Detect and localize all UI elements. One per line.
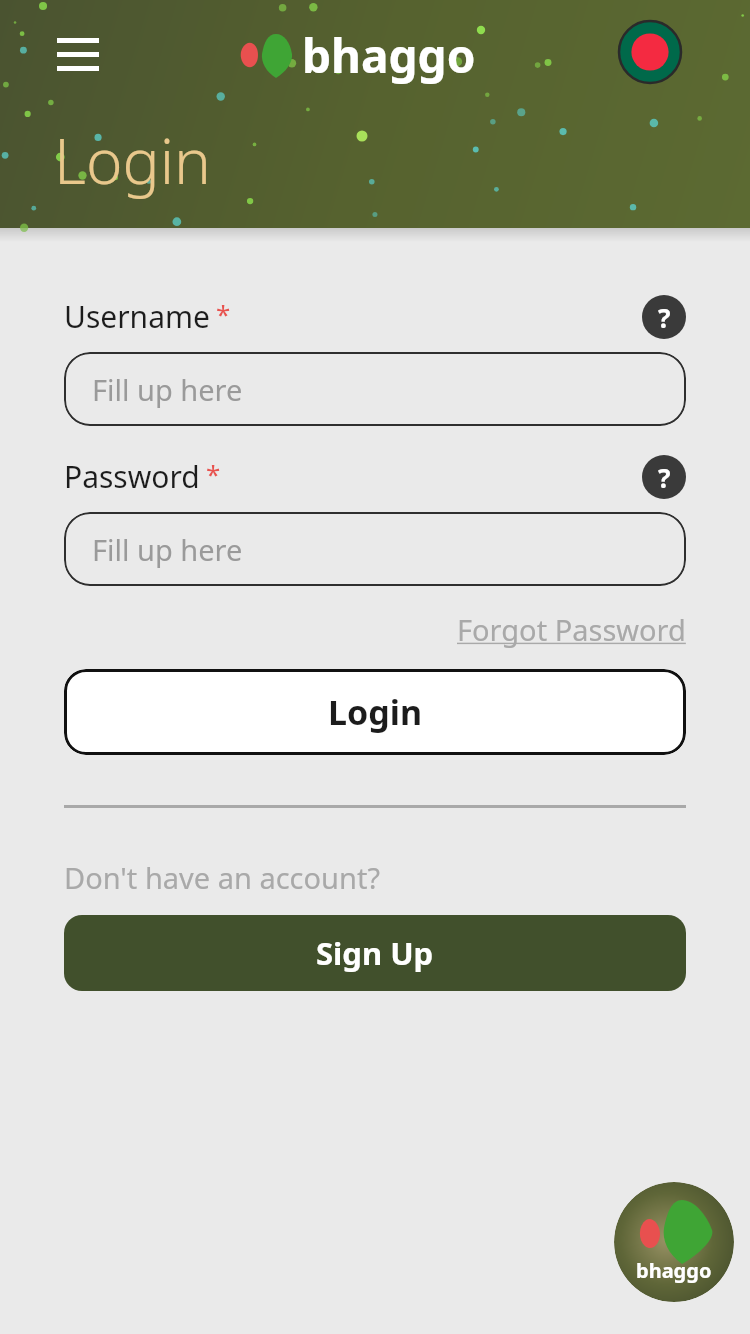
button[interactable]: Login xyxy=(64,669,686,755)
button[interactable]: Menu xyxy=(56,34,100,76)
button[interactable]: bhaggo assistant xyxy=(614,1182,734,1302)
button[interactable]: Forgot Password xyxy=(457,608,686,651)
staticText: bhaggo xyxy=(636,1257,712,1284)
staticText: * xyxy=(206,456,221,491)
staticText: Fill up here xyxy=(92,530,243,569)
staticText: Login xyxy=(328,689,423,735)
staticText: Username xyxy=(64,296,210,337)
button[interactable]: Sign Up xyxy=(64,915,686,991)
staticText: bhaggo xyxy=(302,24,476,87)
button[interactable]: Fill up here xyxy=(64,512,686,586)
staticText: Don't have an account? xyxy=(64,858,380,897)
staticText: * xyxy=(216,296,231,331)
staticText: Password xyxy=(64,456,200,497)
button[interactable]: Help about Password xyxy=(642,455,686,499)
staticText: Sign Up xyxy=(316,932,434,974)
staticText: Fill up here xyxy=(92,370,243,409)
button[interactable]: bhaggo xyxy=(232,24,476,87)
button[interactable]: Fill up here xyxy=(64,352,686,426)
staticText: ? xyxy=(658,460,671,495)
staticText: Login xyxy=(54,118,211,202)
button[interactable]: Language Bangladesh xyxy=(619,21,681,83)
staticText: Forgot Password xyxy=(457,610,686,649)
staticText: ? xyxy=(658,300,671,335)
button[interactable]: Help about Username xyxy=(642,295,686,339)
